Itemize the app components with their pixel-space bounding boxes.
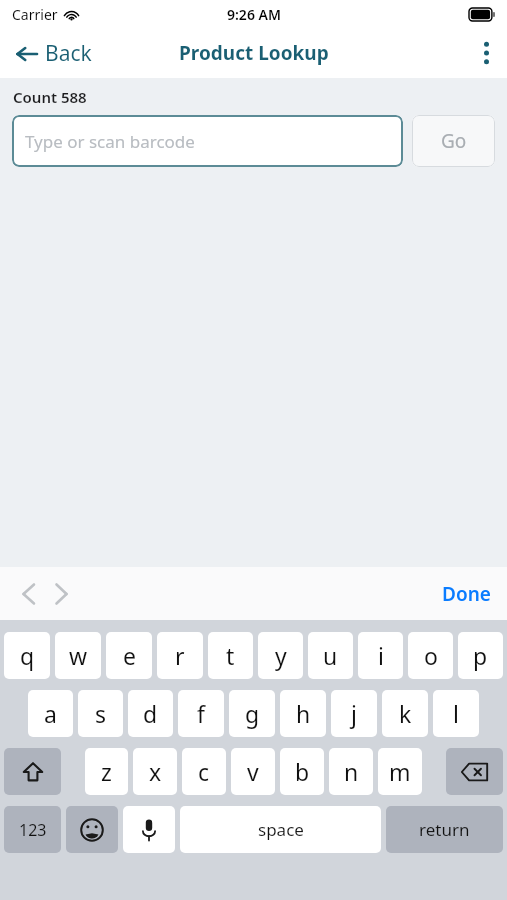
staticText: 9:26 AM: [227, 5, 281, 24]
button[interactable]: f: [178, 690, 224, 737]
staticText: 123: [19, 819, 47, 841]
button[interactable]: Done: [426, 573, 507, 615]
staticText: j: [351, 698, 357, 729]
button[interactable]: x: [133, 748, 177, 795]
button[interactable]: Type or scan barcode: [12, 115, 403, 167]
staticText: space: [258, 818, 304, 841]
staticText: z: [101, 756, 112, 787]
button[interactable]: p: [458, 632, 503, 679]
staticText: r: [175, 640, 185, 671]
button[interactable]: a: [28, 690, 73, 737]
staticText: h: [296, 698, 311, 729]
button[interactable]: z: [85, 748, 128, 795]
button[interactable]: 123: [4, 806, 61, 853]
button[interactable]: q: [4, 632, 50, 679]
staticText: q: [20, 640, 35, 671]
staticText: Type or scan barcode: [25, 130, 195, 153]
button[interactable]: Backspace: [446, 748, 503, 795]
staticText: s: [95, 698, 107, 729]
staticText: Back: [45, 39, 92, 68]
staticText: a: [44, 698, 57, 729]
button[interactable]: Previous field: [0, 573, 45, 615]
staticText: o: [424, 640, 438, 671]
staticText: x: [149, 756, 162, 787]
button[interactable]: i: [358, 632, 403, 679]
button[interactable]: Shift: [4, 748, 61, 795]
button[interactable]: return: [386, 806, 503, 853]
staticText: m: [389, 756, 411, 787]
button[interactable]: m: [378, 748, 422, 795]
button[interactable]: d: [128, 690, 173, 737]
button[interactable]: Emoji: [66, 806, 118, 853]
button[interactable]: j: [331, 690, 377, 737]
button[interactable]: v: [231, 748, 275, 795]
staticText: v: [247, 756, 259, 787]
staticText: i: [378, 640, 384, 671]
button[interactable]: t: [208, 632, 253, 679]
button[interactable]: b: [280, 748, 324, 795]
staticText: Done: [442, 581, 491, 607]
button[interactable]: g: [229, 690, 275, 737]
button[interactable]: Back: [0, 31, 104, 76]
staticText: Carrier: [12, 5, 58, 24]
staticText: e: [123, 640, 136, 671]
staticText: d: [143, 698, 158, 729]
staticText: n: [344, 756, 359, 787]
button[interactable]: space: [180, 806, 381, 853]
button[interactable]: r: [157, 632, 203, 679]
staticText: y: [275, 640, 287, 671]
staticText: Count 588: [13, 87, 87, 107]
button[interactable]: Go: [412, 115, 495, 167]
button[interactable]: h: [280, 690, 326, 737]
staticText: return: [419, 818, 470, 841]
button[interactable]: n: [329, 748, 373, 795]
staticText: Product Lookup: [179, 40, 329, 66]
staticText: c: [198, 756, 210, 787]
button[interactable]: l: [433, 690, 479, 737]
staticText: b: [295, 756, 310, 787]
button[interactable]: c: [182, 748, 226, 795]
staticText: w: [69, 640, 88, 671]
button[interactable]: o: [408, 632, 453, 679]
staticText: g: [245, 698, 260, 729]
staticText: p: [473, 640, 488, 671]
button[interactable]: k: [382, 690, 428, 737]
button[interactable]: e: [106, 632, 152, 679]
button[interactable]: More options: [466, 30, 507, 76]
button[interactable]: w: [55, 632, 101, 679]
staticText: f: [197, 698, 205, 729]
button[interactable]: Next field: [45, 573, 78, 615]
button[interactable]: u: [308, 632, 353, 679]
staticText: k: [399, 698, 412, 729]
staticText: l: [453, 698, 459, 729]
button[interactable]: y: [258, 632, 303, 679]
staticText: u: [323, 640, 338, 671]
staticText: Go: [441, 128, 467, 154]
staticText: t: [226, 640, 235, 671]
button[interactable]: s: [78, 690, 123, 737]
button[interactable]: Dictation: [123, 806, 175, 853]
